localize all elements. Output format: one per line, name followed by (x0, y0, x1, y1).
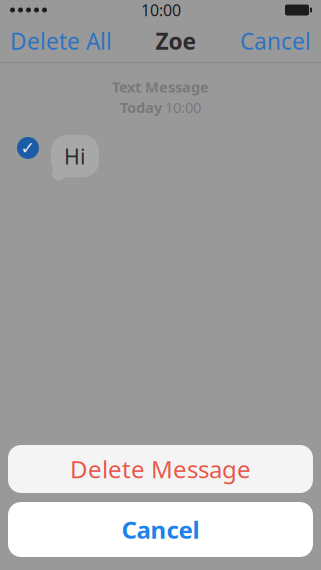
staticText: Today (120, 97, 162, 117)
button[interactable]: Cancel (8, 502, 313, 557)
staticText: Delete All (10, 26, 112, 56)
staticText: Text Message (112, 77, 209, 96)
staticText: Delete Message (70, 453, 251, 485)
staticText: Cancel (121, 514, 199, 545)
staticText: ✓ (20, 138, 35, 158)
staticText: Hi (64, 142, 86, 170)
button[interactable]: Delete Message (8, 445, 313, 493)
button[interactable]: Selected message (13, 133, 43, 163)
staticText: Zoe (155, 26, 196, 56)
button[interactable]: Cancel (240, 18, 321, 64)
button[interactable]: Delete All (0, 18, 112, 64)
staticText: 10:00 (141, 0, 181, 21)
staticText: 10:00 (165, 97, 201, 117)
staticText: Cancel (240, 26, 311, 56)
